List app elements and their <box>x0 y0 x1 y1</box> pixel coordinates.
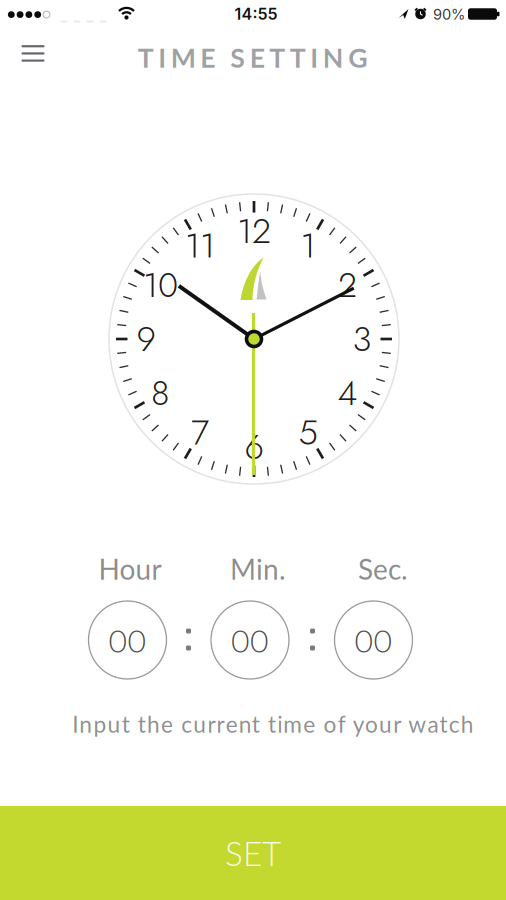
button[interactable]: Minutes <box>211 601 289 679</box>
staticText: 10 <box>143 260 178 310</box>
staticText: 90% <box>433 6 465 23</box>
staticText: 7 <box>191 407 209 458</box>
staticText: 00 <box>354 621 392 659</box>
button[interactable]: Hour <box>88 601 166 679</box>
staticText: 2 <box>338 260 357 310</box>
staticText: Min. <box>230 552 286 586</box>
staticText: 11 <box>185 220 215 270</box>
button[interactable]: SET <box>0 806 506 900</box>
staticText: Input the current time of your watch <box>72 710 474 738</box>
staticText: Sec. <box>358 552 408 586</box>
staticText: 8 <box>151 368 170 418</box>
staticText: 6 <box>244 422 263 472</box>
staticText: 5 <box>298 407 317 458</box>
button[interactable]: Menu <box>21 45 44 63</box>
staticText: 14:55 <box>234 4 277 24</box>
staticText: 3 <box>352 314 371 364</box>
staticText: 00 <box>231 621 269 659</box>
staticText: 00 <box>108 621 146 659</box>
staticText: SET <box>225 833 281 873</box>
staticText: 4 <box>337 368 357 418</box>
staticText: Hour <box>98 552 161 586</box>
staticText: 1 <box>300 220 315 270</box>
button[interactable]: Seconds <box>334 601 412 679</box>
staticText: 12 <box>237 206 271 256</box>
staticText: TIME SETTING <box>138 41 367 73</box>
staticText: 9 <box>136 314 155 364</box>
